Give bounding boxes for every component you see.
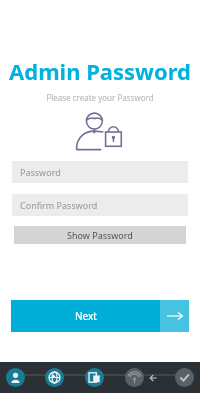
other: Next [160,300,189,332]
button[interactable]: Back [146,370,162,386]
button[interactable]: Network [45,368,64,387]
staticText: Password [20,166,61,178]
button[interactable]: Device [85,368,104,387]
staticText: Confirm Password [20,199,98,211]
staticText: Show Password [67,229,133,241]
button[interactable]: Signal [125,368,144,387]
button[interactable]: Next [11,300,189,332]
button[interactable]: Password [12,161,188,183]
button[interactable]: Done [175,368,194,387]
button[interactable]: Confirm Password [12,194,188,216]
button[interactable]: Account [6,368,25,387]
button[interactable]: Show Password [14,226,186,244]
staticText: Next [75,309,97,323]
staticText: Please create your Password [46,92,154,103]
staticText: Admin Password [9,56,191,86]
